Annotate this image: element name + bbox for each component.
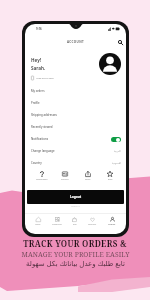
staticText: Recently viewed: [31, 125, 53, 129]
staticText: Favorites: [88, 223, 97, 226]
staticText: +966 562173549: [36, 77, 54, 80]
button[interactable]: Logout: [27, 190, 124, 204]
staticText: Home: [35, 223, 41, 226]
staticText: Change language: [31, 149, 55, 153]
staticText: Categories: [52, 223, 62, 226]
button[interactable]: Country: [25, 157, 126, 169]
staticText: Notifications: [31, 137, 49, 141]
staticText: Country: [31, 161, 42, 165]
staticText: MANAGE YOUR PROFILE EASILY: [21, 250, 130, 259]
staticText: Share: [85, 178, 91, 181]
staticText: العربية: [114, 150, 121, 153]
button[interactable]: Profile: [25, 97, 126, 109]
button[interactable]: Share: [76, 169, 99, 181]
staticText: تابع طلبك وعدل بياناتك بكل سهولة: [26, 259, 125, 269]
staticText: Profile: [31, 101, 40, 105]
button[interactable]: Recently viewed: [25, 121, 126, 133]
staticText: Contact: [61, 178, 69, 181]
staticText: Logout: [70, 195, 82, 199]
button[interactable]: Favorites: [87, 215, 98, 226]
button[interactable]: My orders: [25, 85, 126, 97]
button[interactable]: Search: [115, 37, 126, 48]
staticText: Account: [108, 223, 116, 226]
button[interactable]: Account: [107, 215, 117, 226]
staticText: TRACK YOUR ORDERS &: [23, 238, 127, 249]
staticText: 9:16: [36, 27, 42, 31]
button[interactable]: Information: [30, 169, 53, 181]
staticText: My orders: [31, 89, 45, 93]
staticText: Shipping addresses: [31, 113, 57, 117]
staticText: Hey!: [31, 57, 42, 63]
button[interactable]: Contact: [53, 169, 76, 181]
staticText: Version 1.0: [71, 205, 80, 207]
staticText: Information: [36, 178, 48, 181]
button[interactable]: Rate: [99, 169, 121, 181]
button[interactable]: Bag: [71, 215, 78, 226]
button[interactable]: Categories: [51, 215, 63, 226]
button[interactable]: Shipping addresses: [25, 109, 126, 121]
staticText: ACCOUNT: [67, 40, 85, 44]
staticText: Rate: [108, 178, 113, 181]
staticText: Sarah.: [31, 65, 46, 71]
button[interactable]: Home: [34, 215, 42, 226]
staticText: Bag: [73, 223, 77, 226]
button[interactable]: Change language: [25, 145, 126, 157]
staticText: السعودية: [112, 162, 121, 165]
button[interactable]: Notifications: [25, 133, 126, 145]
